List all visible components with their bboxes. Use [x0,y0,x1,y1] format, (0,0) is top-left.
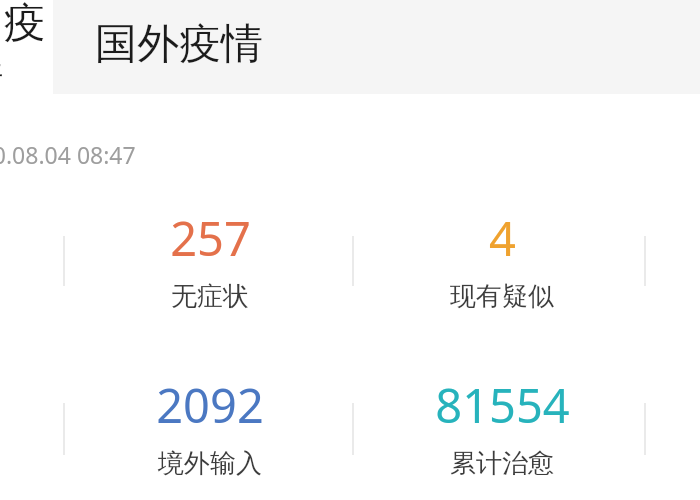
button[interactable]: 4 [360,206,644,313]
staticText: 81554 [435,373,570,437]
button[interactable]: 257 [68,206,352,313]
staticText: 2020.08.04 08:47 [0,139,136,170]
staticText: 2092 [156,373,264,437]
staticText: 境外输入 [158,447,262,480]
button[interactable]: 81554 [360,373,644,480]
staticText: 国外疫情 [95,18,263,71]
button[interactable]: 2092 [68,373,352,480]
staticText: 国内疫情 [0,0,53,91]
button[interactable]: 国外疫情 [53,0,303,94]
button[interactable]: 国内疫情 tab [0,0,53,94]
staticText: 257 [170,206,251,270]
staticText: 4 [489,206,516,270]
staticText: 无症状 [171,280,249,313]
staticText: 累计治愈 [450,447,554,480]
staticText: 现有疑似 [450,280,554,313]
